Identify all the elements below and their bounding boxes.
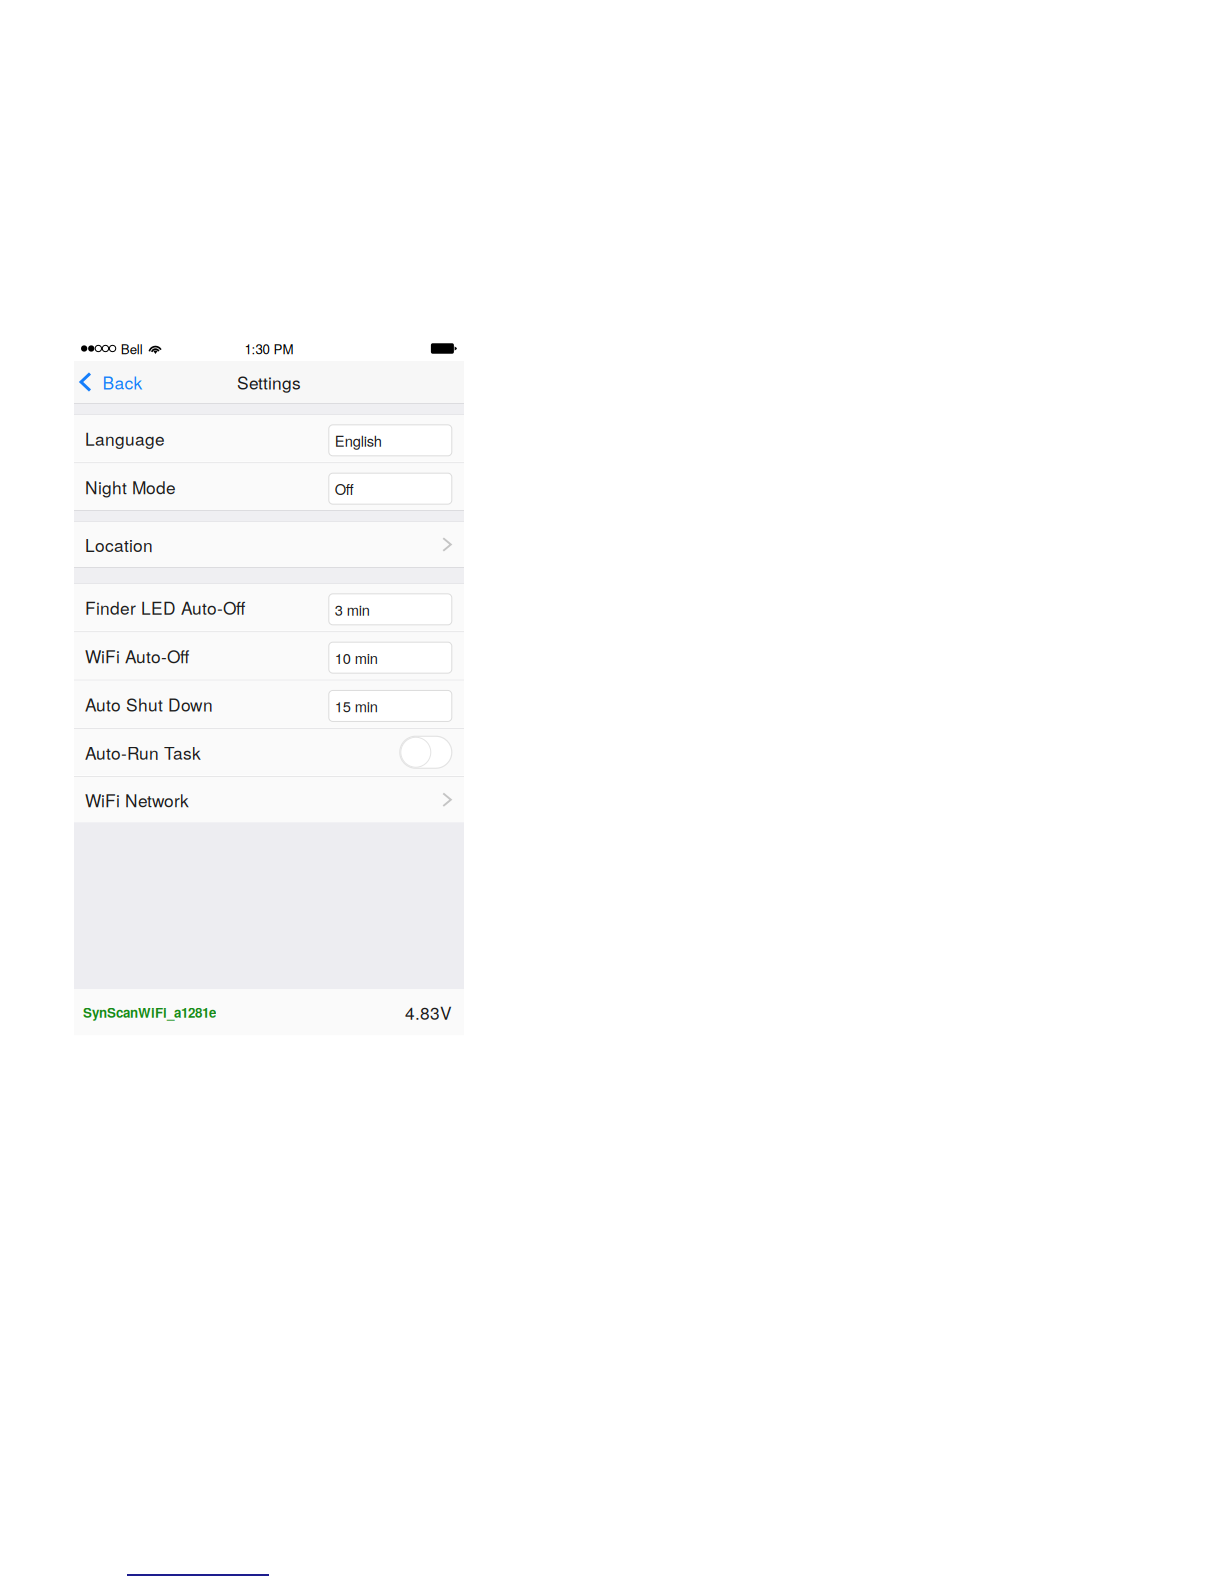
staticText: Off <box>335 478 354 499</box>
button[interactable]: Location <box>74 522 464 567</box>
button[interactable]: WiFi Network <box>74 777 464 822</box>
staticText: Night Mode <box>85 474 176 499</box>
button[interactable]: Language <box>74 415 464 462</box>
staticText: Language <box>85 426 165 451</box>
staticText: 3 min <box>335 599 370 620</box>
staticText: Back <box>102 370 142 394</box>
staticText: 10 min <box>335 647 378 668</box>
staticText: SynScanWiFi_a1281e <box>83 1003 216 1022</box>
staticText: WiFi Network <box>85 787 189 812</box>
button[interactable]: WiFi Auto-Off <box>74 632 464 679</box>
staticText: 4.83V <box>405 1000 452 1025</box>
button[interactable]: Night Mode <box>74 463 464 510</box>
staticText: Finder LED Auto-Off <box>85 595 245 620</box>
button[interactable]: Back <box>74 361 152 403</box>
button[interactable]: Finder LED Auto-Off <box>74 584 464 631</box>
staticText: Settings <box>237 370 301 394</box>
button[interactable]: Auto Shut Down <box>74 681 464 727</box>
staticText: English <box>335 430 382 451</box>
staticText: 1:30 PM <box>244 339 293 358</box>
staticText: Auto Shut Down <box>85 691 213 716</box>
button[interactable]: Auto-Run Task <box>74 729 464 776</box>
staticText: 15 min <box>335 695 378 716</box>
staticText: WiFi Auto-Off <box>85 643 189 668</box>
staticText: Bell <box>121 339 143 358</box>
staticText: Auto-Run Task <box>85 740 201 765</box>
staticText: Location <box>85 532 153 557</box>
